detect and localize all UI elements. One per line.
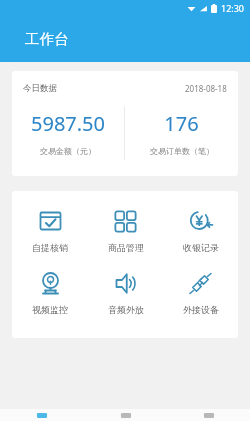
button[interactable]: 外接设备 [163, 270, 238, 316]
staticText: 今日数据 [23, 83, 57, 94]
staticText: 工作台 [25, 30, 69, 48]
button[interactable]: Orders [84, 409, 167, 421]
button[interactable]: 自提核销 [12, 208, 88, 254]
button[interactable]: Profile [167, 409, 250, 421]
button[interactable]: 视频监控 [12, 270, 88, 316]
staticText: 交易金额（元） [40, 146, 96, 156]
button[interactable]: 收银记录 [163, 208, 238, 254]
staticText: 商品管理 [108, 242, 144, 253]
button[interactable]: 音频外放 [88, 270, 163, 316]
button[interactable]: 商品管理 [88, 208, 163, 254]
staticText: 5987.50 [31, 110, 105, 137]
staticText: 2018-08-18 [185, 83, 227, 94]
staticText: 自提核销 [32, 242, 68, 253]
staticText: 176 [164, 110, 199, 137]
staticText: 外接设备 [183, 304, 219, 315]
staticText: 12:30 [221, 2, 245, 14]
staticText: 视频监控 [32, 304, 68, 315]
staticText: 收银记录 [183, 242, 219, 253]
staticText: 交易订单数（笔） [150, 146, 214, 156]
button[interactable]: Workbench [0, 409, 84, 421]
staticText: 音频外放 [108, 304, 144, 315]
